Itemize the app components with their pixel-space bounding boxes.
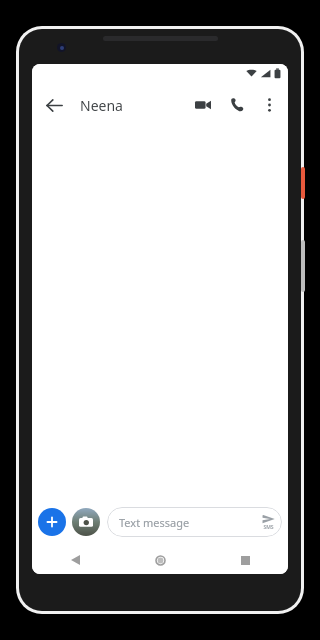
staticText: Text message [119,515,190,530]
button[interactable]: Text message [107,507,282,537]
button[interactable]: Back [59,546,91,574]
button[interactable]: Video call [186,88,220,122]
button[interactable]: More options [254,90,284,120]
button[interactable]: Back [36,87,72,123]
button[interactable]: Recent apps [229,546,261,574]
button[interactable]: Camera [72,508,100,536]
button[interactable]: Home [144,546,176,574]
button[interactable]: Send SMS [260,514,277,531]
button[interactable]: Add attachment [38,508,66,536]
button[interactable]: Call [220,88,254,122]
staticText: Neena [80,96,123,115]
staticText: SMS [263,524,274,531]
